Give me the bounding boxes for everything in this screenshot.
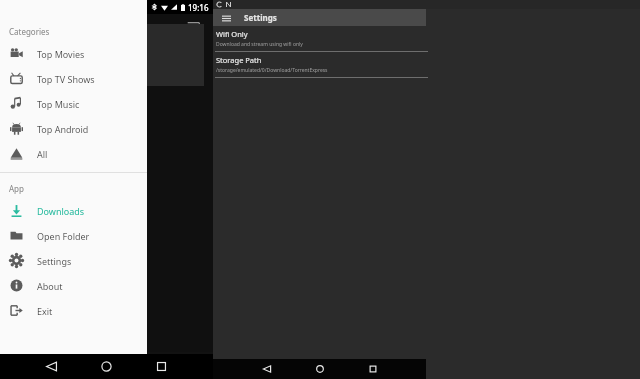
- button[interactable]: Exit: [0, 298, 147, 323]
- staticText: Wifi Only: [216, 29, 248, 39]
- staticText: About: [37, 280, 63, 292]
- button[interactable]: All: [0, 141, 147, 166]
- staticText: Exit: [37, 305, 53, 317]
- button[interactable]: 2x 1.1 GB: [4, 24, 204, 86]
- button[interactable]: Wifi Only: [213, 26, 429, 52]
- staticText: App: [9, 183, 24, 194]
- button[interactable]: Home: [310, 359, 330, 379]
- button[interactable]: Cast: [183, 18, 203, 38]
- staticText: Download and stream using wifi only: [216, 41, 303, 48]
- staticText: Downloads: [37, 205, 85, 217]
- button[interactable]: Home: [94, 354, 119, 379]
- staticText: Categories: [9, 26, 50, 37]
- button[interactable]: Back: [257, 359, 277, 379]
- button[interactable]: Top Android: [0, 116, 147, 141]
- staticText: Settings: [244, 12, 277, 23]
- button[interactable]: Storage Path: [213, 52, 429, 78]
- button[interactable]: Recents: [363, 359, 383, 379]
- staticText: Top Music: [37, 98, 80, 110]
- staticText: All: [37, 148, 48, 160]
- button[interactable]: Settings: [0, 248, 147, 273]
- button[interactable]: Open navigation drawer: [220, 12, 232, 24]
- staticText: Top Movies: [37, 48, 85, 60]
- staticText: Open Folder: [37, 230, 90, 242]
- staticText: Top TV Shows: [37, 73, 95, 85]
- button[interactable]: About: [0, 273, 147, 298]
- staticText: 2x 1.1 GB: [52, 42, 88, 53]
- button[interactable]: Open Folder: [0, 223, 147, 248]
- button[interactable]: Back: [39, 354, 64, 379]
- button[interactable]: Top Music: [0, 91, 147, 116]
- staticText: Top Android: [37, 123, 89, 135]
- button[interactable]: Downloads: [0, 198, 147, 223]
- staticText: Settings: [37, 255, 72, 267]
- staticText: 19:16: [188, 2, 209, 13]
- button[interactable]: Recents: [149, 354, 174, 379]
- staticText: Storage Path: [216, 55, 262, 65]
- staticText: /storage/emulated/0/Download/TorrentExpr…: [216, 67, 328, 74]
- button[interactable]: Top TV Shows: [0, 66, 147, 91]
- button[interactable]: Top Movies: [0, 41, 147, 66]
